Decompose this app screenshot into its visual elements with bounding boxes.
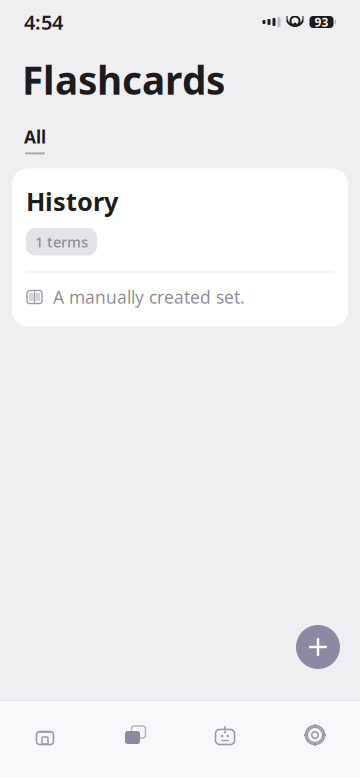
button[interactable]: All (22, 119, 48, 156)
button[interactable]: History (12, 168, 348, 326)
staticText: History (26, 184, 118, 218)
staticText: 93 (314, 14, 328, 30)
staticText: Flashcards (22, 54, 225, 105)
button[interactable]: Assistant (180, 713, 270, 757)
button[interactable]: Create flashcard set (292, 621, 344, 673)
staticText: 1 terms (35, 232, 88, 251)
staticText: 4:54 (24, 9, 63, 35)
staticText: A manually created set. (53, 285, 245, 308)
button[interactable]: Settings (270, 713, 360, 757)
staticText: All (24, 125, 46, 148)
button[interactable]: Sets (90, 713, 180, 757)
button[interactable]: Home (0, 713, 90, 757)
